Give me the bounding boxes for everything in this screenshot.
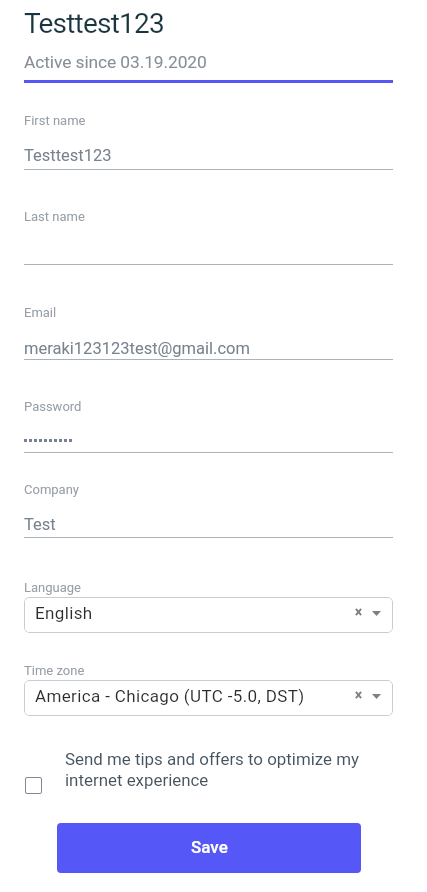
staticText: Send me tips and offers to optimize my i… [65,749,393,791]
staticText: First name [24,113,86,128]
button[interactable]: Save [57,823,361,873]
staticText: Password [24,399,82,414]
staticText: Active since 03.19.2020 [24,52,207,72]
button[interactable]: Clear [349,603,367,621]
button[interactable]: English [24,597,393,633]
staticText: Company [24,482,79,497]
button[interactable]: Open dropdown [367,687,385,705]
staticText: Save [191,837,228,857]
staticText: Testtest123 [24,146,112,165]
staticText: Last name [24,209,85,224]
staticText: America - Chicago (UTC -5.0, DST) [35,686,305,706]
staticText: Time zone [24,663,85,678]
button[interactable]: America - Chicago (UTC -5.0, DST) [24,680,393,716]
staticText: meraki123123test@gmail.com [24,339,250,358]
staticText: Email [24,305,57,320]
staticText: Language [24,580,81,595]
button[interactable]: Send me tips and offers checkbox [25,777,42,794]
button[interactable]: Clear [349,686,367,704]
staticText: English [35,603,93,623]
button[interactable]: Open dropdown [367,604,385,622]
staticText: Testtest123 [24,7,164,40]
staticText: Test [24,515,56,534]
